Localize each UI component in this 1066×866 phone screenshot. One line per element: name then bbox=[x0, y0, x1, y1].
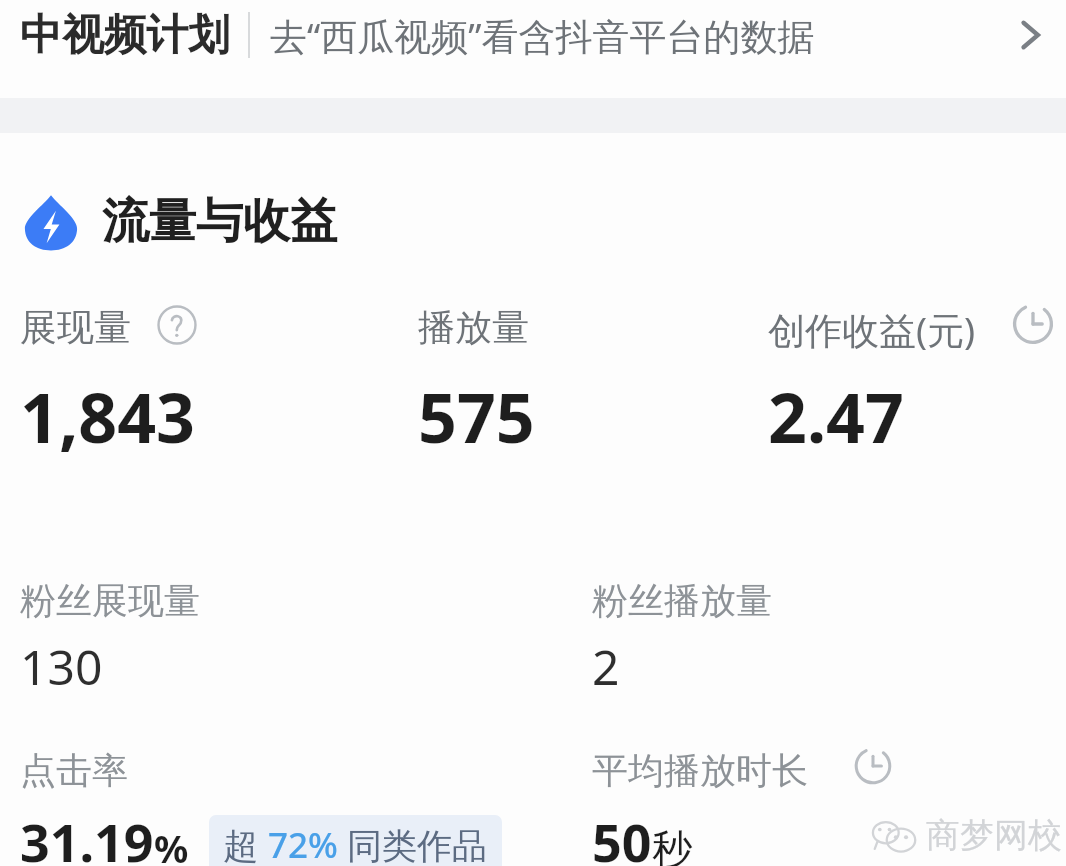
button[interactable]: 平均播放时长说明 bbox=[852, 745, 894, 787]
staticText: 同类作品 bbox=[338, 821, 488, 866]
button[interactable]: 展现量说明 bbox=[155, 303, 199, 347]
staticText: 超 bbox=[223, 821, 268, 866]
staticText: 1,843 bbox=[20, 370, 195, 463]
staticText: 2.47 bbox=[768, 370, 904, 463]
staticText: 播放量 bbox=[418, 304, 529, 351]
button[interactable]: 超 bbox=[209, 815, 502, 866]
staticText: 点击率 bbox=[20, 748, 128, 793]
button[interactable]: 收益更新时间 bbox=[1010, 301, 1056, 347]
staticText: 31.19 bbox=[20, 806, 154, 866]
staticText: 130 bbox=[20, 634, 103, 699]
staticText: 中视频计划 bbox=[20, 9, 230, 62]
button[interactable]: 流量与收益图标 bbox=[22, 192, 337, 251]
other: 前往西瓜视频 bbox=[1012, 17, 1048, 53]
staticText: 粉丝播放量 bbox=[592, 578, 772, 623]
staticText: 575 bbox=[418, 370, 535, 463]
staticText: 商梦网校 bbox=[926, 814, 1062, 857]
staticText: % bbox=[154, 822, 189, 866]
staticText: 创作收益(元) bbox=[768, 304, 976, 355]
staticText: 平均播放时长 bbox=[592, 748, 808, 793]
staticText: 50 bbox=[592, 806, 652, 866]
button[interactable]: 中视频计划 bbox=[0, 0, 1066, 70]
other: 流量与收益图标 bbox=[22, 193, 80, 251]
staticText: 秒 bbox=[652, 824, 692, 866]
staticText: 72% bbox=[268, 821, 338, 866]
staticText: 粉丝展现量 bbox=[20, 578, 200, 623]
staticText: 去“西瓜视频”看含抖音平台的数据 bbox=[270, 10, 815, 61]
staticText: 流量与收益 bbox=[102, 192, 337, 251]
staticText: 展现量 bbox=[20, 304, 131, 351]
staticText: 2 bbox=[592, 634, 620, 699]
